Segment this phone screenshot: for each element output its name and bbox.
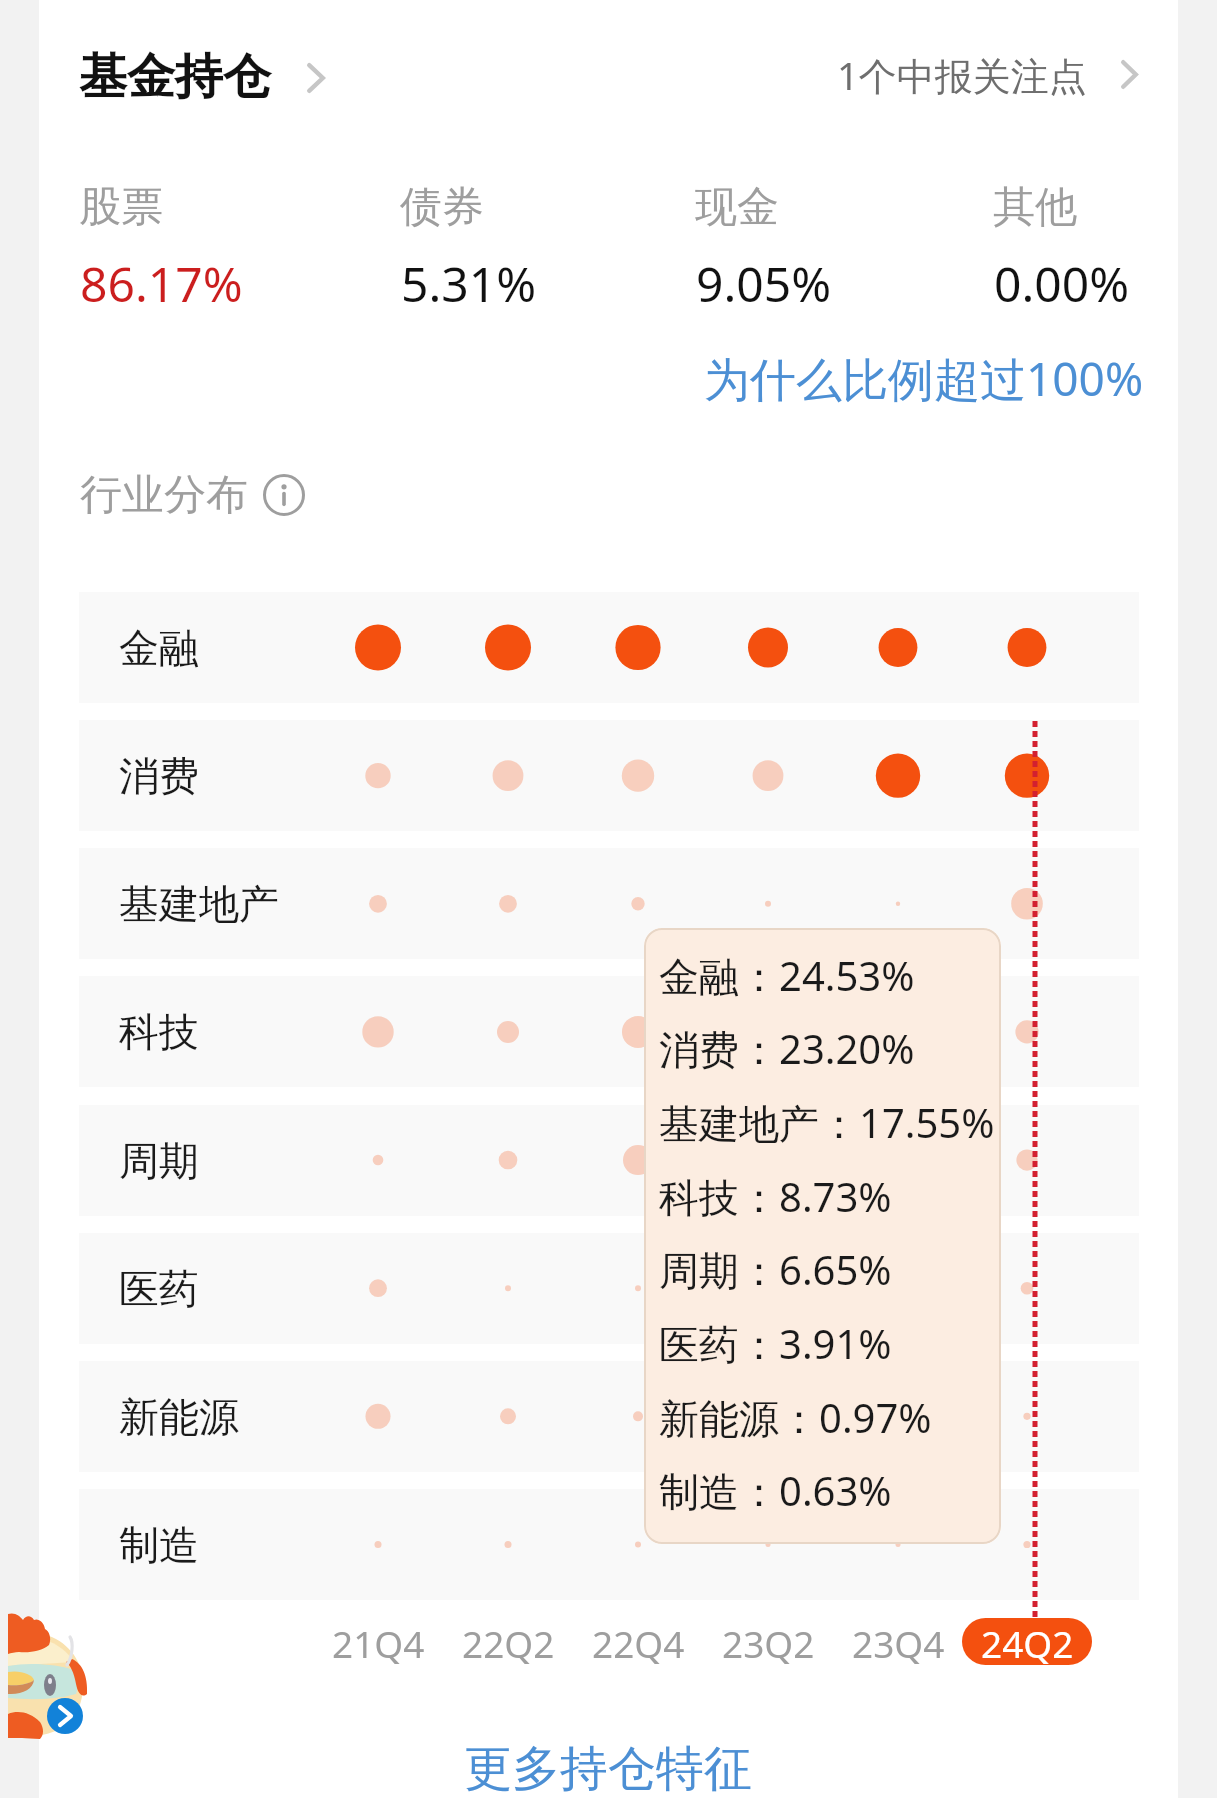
button[interactable]: 基建地产 xyxy=(79,848,1139,959)
staticText: 金融：24.53% xyxy=(659,948,915,1003)
staticText: 22Q4 xyxy=(592,1618,685,1665)
staticText: 行业分布 xyxy=(80,469,248,522)
button[interactable]: 为什么比例超过100% xyxy=(704,347,1144,410)
staticText: 消费 xyxy=(119,751,199,801)
button[interactable]: 医药 xyxy=(79,1233,1139,1344)
staticText: 金融 xyxy=(119,623,199,673)
button[interactable]: 22Q4 xyxy=(573,1618,703,1665)
staticText: 23Q4 xyxy=(852,1618,945,1665)
button[interactable]: 新能源 xyxy=(79,1361,1139,1472)
button[interactable]: 更多持仓特征 xyxy=(464,1739,752,1798)
button[interactable]: 基金持仓 xyxy=(60,20,350,130)
staticText: 制造 xyxy=(119,1520,199,1570)
button[interactable]: 22Q2 xyxy=(443,1618,573,1665)
button[interactable]: 科技 xyxy=(79,976,1139,1087)
staticText: 86.17% xyxy=(80,251,243,316)
button[interactable]: 23Q4 xyxy=(833,1618,963,1665)
staticText: 9.05% xyxy=(696,251,832,316)
staticText: 医药 xyxy=(119,1264,199,1314)
staticText: 周期 xyxy=(119,1136,199,1186)
staticText: 1个中报关注点 xyxy=(837,49,1087,101)
staticText: 21Q4 xyxy=(332,1618,425,1665)
staticText: 股票 xyxy=(79,181,163,234)
staticText: 科技 xyxy=(119,1007,199,1057)
button[interactable]: 周期 xyxy=(79,1105,1139,1216)
staticText: 24Q2 xyxy=(981,1618,1074,1665)
button[interactable]: Open assistant xyxy=(47,1698,83,1734)
staticText: 基建地产 xyxy=(119,879,279,929)
staticText: 5.31% xyxy=(401,251,537,316)
staticText: 其他 xyxy=(993,181,1077,234)
button[interactable]: 金融 xyxy=(79,592,1139,703)
staticText: 新能源 xyxy=(119,1392,239,1442)
button[interactable]: 23Q2 xyxy=(703,1618,833,1665)
button[interactable]: 24Q2 xyxy=(962,1618,1092,1665)
staticText: 22Q2 xyxy=(462,1618,555,1665)
staticText: 0.00% xyxy=(994,251,1130,316)
button[interactable]: Assistant xyxy=(8,1610,92,1742)
staticText: 周期：6.65% xyxy=(659,1242,892,1297)
staticText: 消费：23.20% xyxy=(659,1021,915,1076)
button[interactable]: 制造 xyxy=(79,1489,1139,1600)
button[interactable]: 1个中报关注点 xyxy=(820,20,1165,130)
staticText: 基建地产：17.55% xyxy=(659,1095,995,1150)
staticText: 债券 xyxy=(400,181,484,234)
staticText: 制造：0.63% xyxy=(659,1463,892,1518)
staticText: 现金 xyxy=(695,181,779,234)
staticText: 新能源：0.97% xyxy=(659,1390,932,1445)
staticText: 23Q2 xyxy=(722,1618,815,1665)
staticText: 科技：8.73% xyxy=(659,1169,892,1224)
button[interactable]: 金融：24.53% xyxy=(644,928,1001,1544)
staticText: 医药：3.91% xyxy=(659,1316,892,1371)
staticText: 基金持仓 xyxy=(79,47,271,107)
button[interactable]: Info xyxy=(264,475,304,515)
button[interactable]: 21Q4 xyxy=(313,1618,443,1665)
button[interactable]: 消费 xyxy=(79,720,1139,831)
